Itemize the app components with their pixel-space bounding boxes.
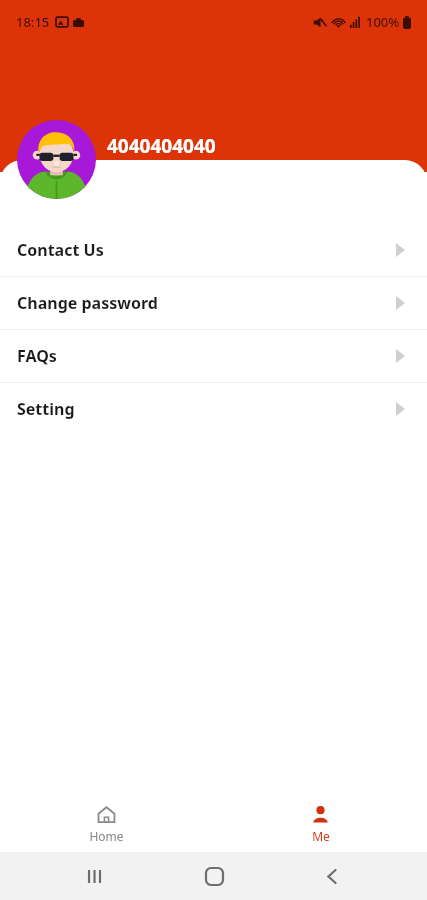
staticText: Contact Us <box>17 239 104 261</box>
staticText: Home <box>89 828 124 844</box>
button[interactable]: Home <box>67 801 146 848</box>
button[interactable]: Back <box>308 852 356 900</box>
button[interactable]: FAQs <box>0 330 427 382</box>
staticText: 4040404040 <box>107 133 216 159</box>
staticText: Setting <box>17 398 75 420</box>
staticText: 18:15 <box>16 13 50 31</box>
button[interactable]: Contact Us <box>0 224 427 276</box>
button[interactable]: Change password <box>0 277 427 329</box>
staticText: Me <box>312 828 330 844</box>
button[interactable]: Recent apps <box>71 852 119 900</box>
staticText: 100% <box>366 13 400 31</box>
button[interactable]: Home <box>190 852 238 900</box>
staticText: Change password <box>17 292 158 314</box>
staticText: FAQs <box>17 345 57 367</box>
button[interactable]: Me <box>289 801 352 848</box>
button[interactable]: Setting <box>0 383 427 435</box>
